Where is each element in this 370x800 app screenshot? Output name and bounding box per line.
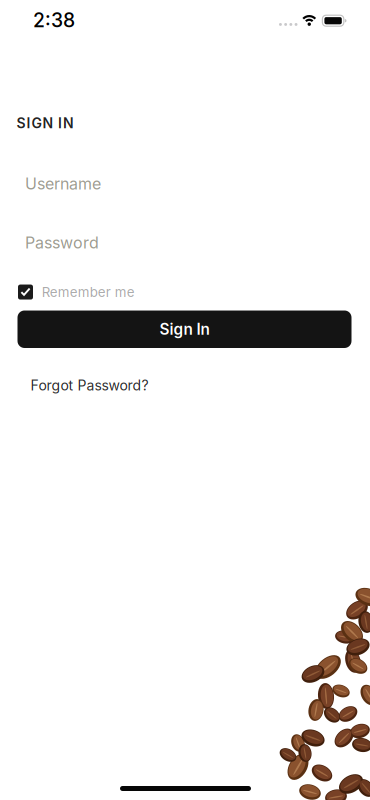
staticText: I bbox=[58, 115, 62, 131]
staticText: Forgot Password? bbox=[30, 377, 148, 394]
staticText: I bbox=[26, 115, 30, 131]
button[interactable]: Sign In bbox=[17, 310, 351, 348]
textField[interactable]: Username bbox=[25, 174, 352, 193]
staticText: N bbox=[42, 115, 53, 131]
textField[interactable]: Password bbox=[25, 233, 352, 252]
button[interactable]: Forgot Password? bbox=[30, 377, 148, 394]
staticText: S bbox=[16, 115, 25, 131]
staticText: Password bbox=[25, 233, 99, 252]
staticText: 2:38 bbox=[33, 8, 75, 32]
staticText: Username bbox=[25, 174, 101, 193]
staticText: N bbox=[63, 115, 74, 131]
staticText: Remember me bbox=[42, 284, 135, 300]
button[interactable]: Remember me bbox=[18, 284, 135, 300]
staticText: G bbox=[31, 115, 41, 131]
staticText: Sign In bbox=[159, 320, 209, 339]
